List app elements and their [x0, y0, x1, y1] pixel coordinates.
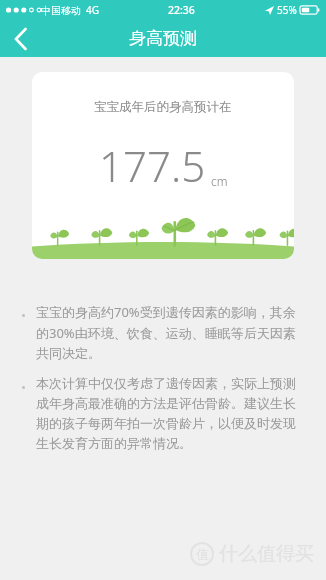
- staticText: 什么值得买: [219, 542, 314, 566]
- button[interactable]: Back: [0, 20, 42, 57]
- staticText: 宝宝成年后的身高预计在: [94, 99, 232, 115]
- staticText: 55%: [277, 3, 297, 17]
- staticText: 身高预测: [129, 28, 197, 49]
- staticText: 本次计算中仅仅考虑了遗传因素，实际上预测成年身高最准确的方法是评估骨龄。建议生长…: [36, 375, 304, 452]
- staticText: 值: [196, 546, 209, 562]
- staticText: 宝宝的身高约70%受到遗传因素的影响，其余的30%由环境、饮食、运动、睡眠等后天…: [36, 303, 304, 362]
- staticText: cm: [211, 173, 228, 189]
- staticText: 22:36: [168, 3, 195, 17]
- staticText: 177.5: [99, 137, 206, 194]
- staticText: 中国移动: [41, 4, 81, 17]
- button[interactable]: 宝宝成年后的身高预计在: [32, 72, 294, 259]
- staticText: 4G: [86, 3, 99, 17]
